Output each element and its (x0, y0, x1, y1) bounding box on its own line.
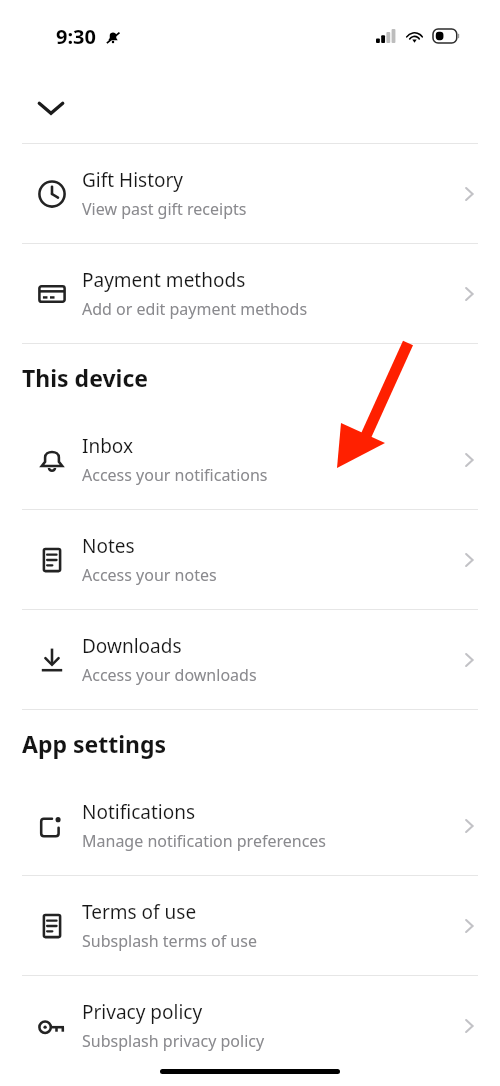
button[interactable]: Collapse (22, 79, 80, 137)
staticText: Notes (82, 533, 135, 559)
button[interactable]: Downloads (0, 610, 500, 709)
staticText: Subsplash privacy policy (82, 1030, 265, 1052)
staticText: Payment methods (82, 267, 246, 293)
staticText: Manage notification preferences (82, 830, 327, 852)
button[interactable]: Notes (0, 510, 500, 609)
staticText: Inbox (82, 433, 134, 459)
staticText: App settings (22, 728, 167, 759)
button[interactable]: Privacy policy (0, 976, 500, 1075)
button[interactable]: Payment methods (0, 244, 500, 343)
staticText: View past gift receipts (82, 198, 247, 220)
button[interactable]: Gift History (0, 144, 500, 243)
staticText: Downloads (82, 633, 182, 659)
staticText: Access your notifications (82, 464, 268, 486)
button[interactable]: Inbox (0, 410, 500, 509)
button[interactable]: Terms of use (0, 876, 500, 975)
staticText: Privacy policy (82, 999, 203, 1025)
staticText: Gift History (82, 167, 184, 193)
staticText: Add or edit payment methods (82, 298, 308, 320)
staticText: Access your downloads (82, 664, 257, 686)
staticText: 9:30 (56, 23, 96, 50)
staticText: Subsplash terms of use (82, 930, 257, 952)
button[interactable]: Notifications (0, 776, 500, 875)
staticText: Notifications (82, 799, 196, 825)
staticText: Terms of use (82, 899, 197, 925)
staticText: Access your notes (82, 564, 217, 586)
staticText: This device (22, 362, 149, 393)
